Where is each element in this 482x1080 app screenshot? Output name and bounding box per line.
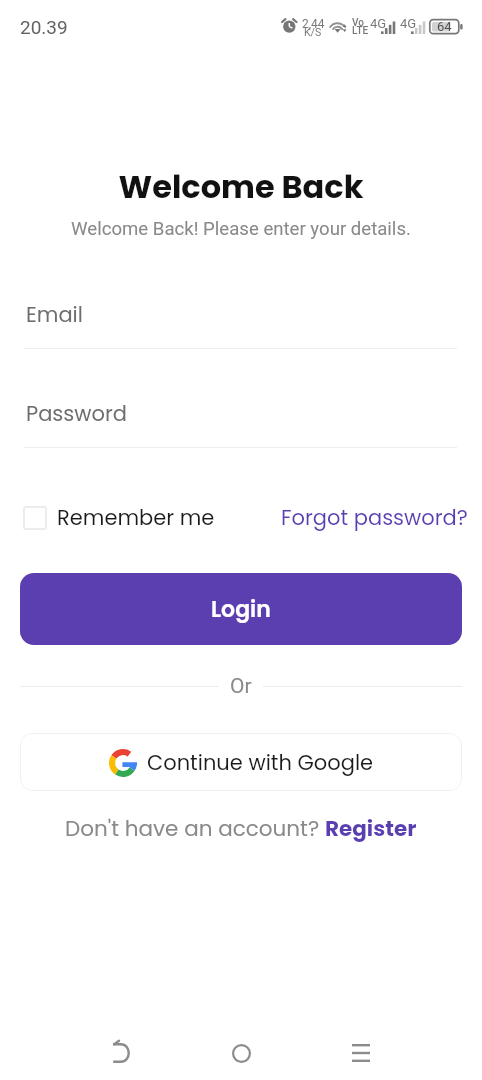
staticText: Continue with Google: [147, 748, 374, 777]
staticText: 64: [437, 19, 452, 34]
button[interactable]: Home: [210, 1026, 272, 1080]
staticText: Welcome Back: [0, 164, 482, 209]
button[interactable]: Don't have an account?: [65, 813, 417, 843]
staticText: 4G: [370, 16, 387, 31]
staticText: Password: [26, 399, 127, 428]
button[interactable]: Login: [20, 573, 462, 645]
staticText: 2,44: [302, 17, 325, 31]
button[interactable]: Forgot password?: [281, 503, 468, 532]
staticText: Welcome Back! Please enter your details.: [0, 218, 482, 240]
staticText: Register: [325, 813, 417, 843]
staticText: 4G: [400, 16, 417, 31]
staticText: K/S: [304, 26, 322, 38]
staticText: Email: [26, 300, 83, 329]
button[interactable]: Remember me: [23, 503, 215, 532]
staticText: LTE: [352, 25, 369, 37]
staticText: Vo: [352, 17, 364, 29]
button[interactable]: Back: [90, 1026, 152, 1080]
staticText: Remember me: [57, 503, 215, 532]
button[interactable]: Recent apps: [330, 1026, 392, 1080]
staticText: 20.39: [20, 16, 68, 38]
staticText: Don't have an account?: [65, 813, 325, 843]
button[interactable]: Continue with Google: [20, 733, 462, 791]
staticText: Or: [230, 674, 252, 698]
staticText: Login: [211, 594, 271, 625]
